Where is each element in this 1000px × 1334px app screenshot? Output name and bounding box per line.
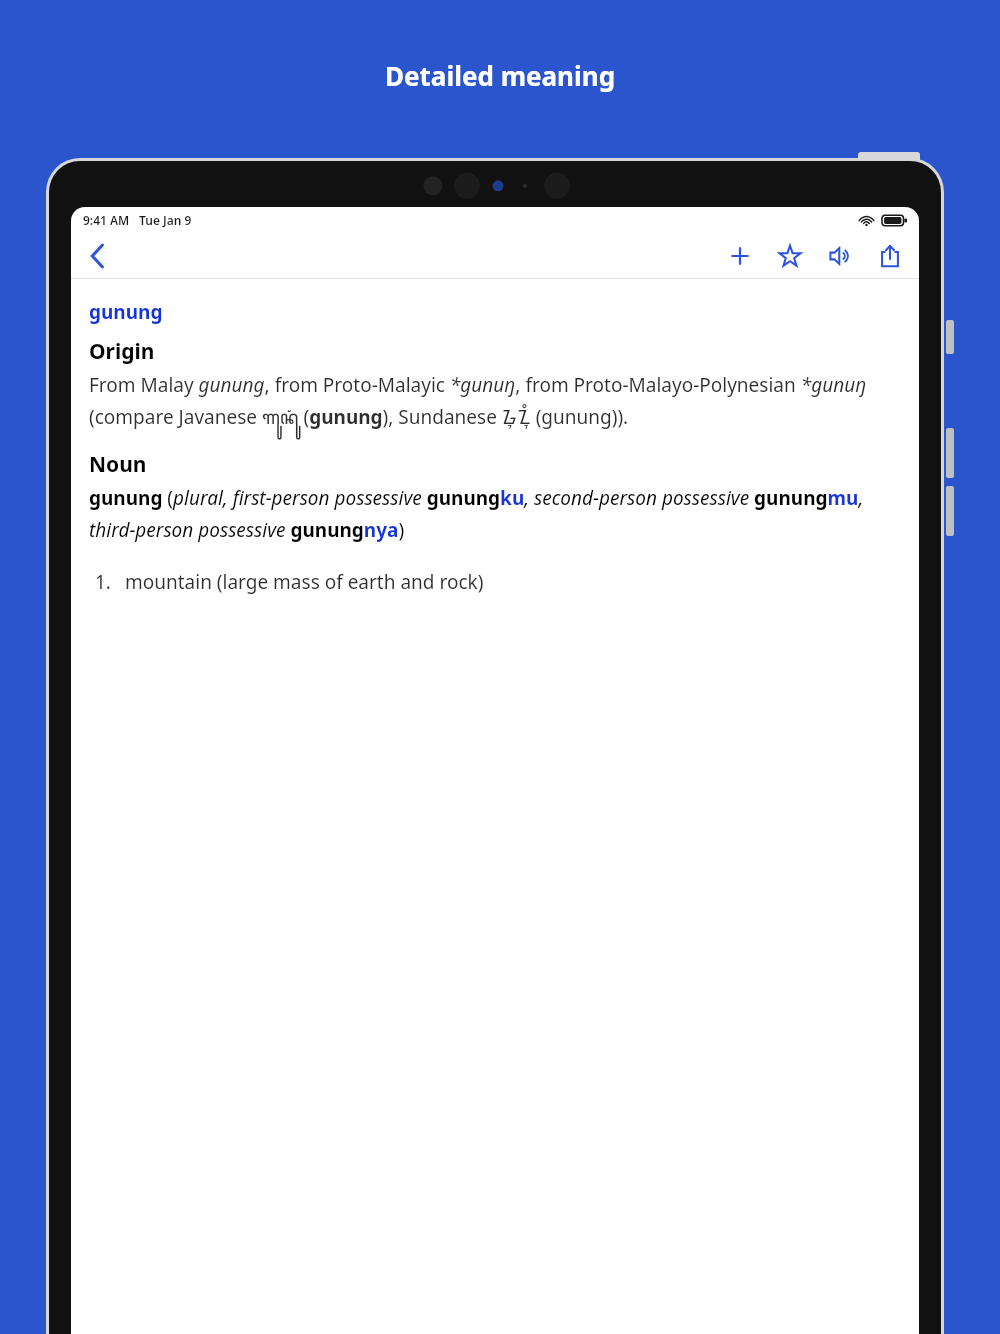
- staticText: From Malay gunung, from Proto-Malayic *g…: [89, 372, 901, 442]
- staticText: 1.: [95, 569, 111, 595]
- staticText: 9:41 AM: [83, 212, 130, 228]
- button[interactable]: Favorite: [773, 239, 807, 273]
- staticText: Noun: [89, 450, 147, 479]
- staticText: Origin: [89, 337, 155, 366]
- staticText: gunung (plural, first-person possessive …: [89, 485, 901, 543]
- button[interactable]: Back: [77, 236, 117, 276]
- button[interactable]: gunung: [89, 299, 163, 325]
- button[interactable]: Pronounce: [823, 239, 857, 273]
- staticText: Detailed meaning: [385, 58, 616, 93]
- button[interactable]: Share: [873, 239, 907, 273]
- staticText: mountain (large mass of earth and rock): [125, 569, 484, 595]
- button[interactable]: Add: [723, 239, 757, 273]
- staticText: Tue Jan 9: [139, 212, 192, 228]
